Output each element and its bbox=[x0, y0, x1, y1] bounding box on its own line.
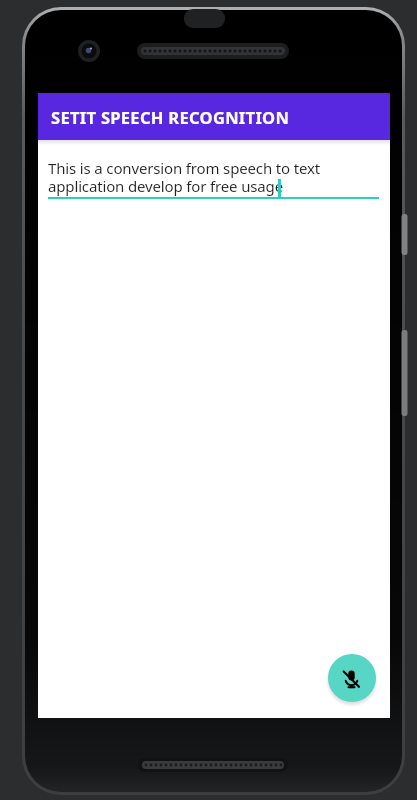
button[interactable]: This is a conversion from speech to text… bbox=[48, 158, 321, 196]
button[interactable] bbox=[328, 654, 376, 702]
staticText: SETIT SPEECH RECOGNITION bbox=[51, 106, 290, 128]
button[interactable]: SETIT SPEECH RECOGNITION bbox=[38, 93, 390, 140]
